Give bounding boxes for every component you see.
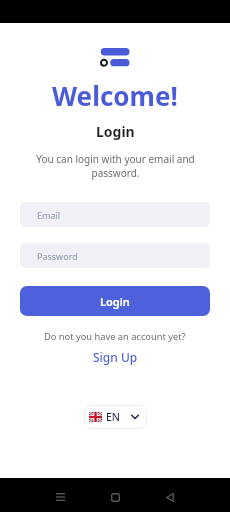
staticText: Login <box>100 294 130 309</box>
staticText: Welcome! <box>52 78 178 113</box>
staticText: Password <box>37 250 78 262</box>
staticText: EN <box>106 410 120 424</box>
button[interactable]: Sign Up <box>93 349 138 365</box>
button[interactable]: Login <box>20 286 210 316</box>
staticText: Do not you have an account yet? <box>44 330 186 343</box>
staticText: You can login with your email and passwo… <box>36 152 195 180</box>
button[interactable]: EN <box>84 405 147 429</box>
button[interactable]: Email <box>20 202 210 227</box>
button[interactable] <box>43 482 77 512</box>
button[interactable] <box>153 482 187 512</box>
staticText: Login <box>96 122 135 141</box>
button[interactable]: Password <box>20 243 210 268</box>
staticText: Email <box>37 209 61 221</box>
button[interactable] <box>98 482 132 512</box>
